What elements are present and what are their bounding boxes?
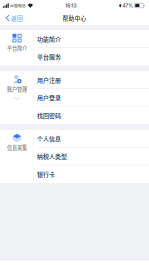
- staticText: 功能简介: [37, 34, 61, 43]
- staticText: 银行卡: [37, 170, 55, 178]
- button[interactable]: 功能简介: [34, 30, 149, 48]
- staticText: 中国电信: [10, 3, 26, 8]
- staticText: 信息采集: [7, 144, 27, 151]
- button[interactable]: 用户注册: [34, 71, 149, 89]
- button[interactable]: 个人信息: [34, 130, 149, 148]
- staticText: 用户注册: [37, 75, 61, 84]
- button[interactable]: 银行卡: [34, 165, 149, 183]
- staticText: 个人信息: [37, 134, 61, 143]
- button[interactable]: 平台服务: [34, 48, 149, 66]
- staticText: 纳税人类型: [37, 152, 67, 161]
- staticText: 平台服务: [37, 52, 61, 61]
- staticText: 用户登录: [37, 93, 61, 102]
- staticText: 16:13: [65, 2, 76, 9]
- button[interactable]: 用户登录: [34, 89, 149, 107]
- staticText: 47%: [122, 2, 133, 9]
- button[interactable]: 返回: [0, 11, 28, 25]
- button[interactable]: 平台简介: [0, 30, 34, 66]
- button[interactable]: 纳税人类型: [34, 148, 149, 165]
- button[interactable]: 信息采集: [0, 130, 34, 183]
- button[interactable]: 找回密码: [34, 107, 149, 124]
- staticText: 返回: [11, 14, 23, 22]
- staticText: 账户管理: [7, 85, 27, 93]
- staticText: 找回密码: [37, 111, 61, 120]
- button[interactable]: 账户管理: [0, 71, 34, 124]
- staticText: 帮助中心: [62, 14, 86, 22]
- staticText: 平台简介: [7, 44, 27, 52]
